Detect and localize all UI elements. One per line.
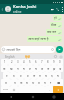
button[interactable]: 9 [51, 59, 57, 65]
button[interactable]: Shift [1, 79, 11, 86]
button[interactable]: म [36, 79, 42, 86]
button[interactable]: 5 [27, 59, 33, 65]
button[interactable]: 6 [33, 59, 39, 65]
staticText: क्या कर रहे [47, 30, 57, 34]
staticText: 0 [59, 60, 61, 64]
button[interactable]: English [1, 54, 19, 59]
staticText: online [13, 10, 22, 14]
button[interactable]: घ [21, 65, 27, 72]
button[interactable]: Back [0, 93, 22, 100]
staticText: र [50, 81, 52, 85]
staticText: घ [23, 67, 25, 71]
button[interactable]: ज [45, 65, 51, 72]
staticText: त [39, 74, 41, 78]
button[interactable]: थ [43, 72, 49, 79]
button[interactable]: Keyboard settings [58, 54, 63, 59]
button[interactable]: 4 [21, 59, 27, 65]
button[interactable]: ब [24, 79, 30, 86]
staticText: Kanha Joshi [13, 4, 37, 10]
button[interactable]: 3 [15, 59, 21, 65]
button[interactable]: Send [56, 46, 63, 53]
button[interactable]: More options [60, 4, 64, 14]
button[interactable]: क [1, 65, 8, 72]
button[interactable]: Recent apps [43, 93, 64, 100]
button[interactable]: Enter [53, 86, 63, 93]
button[interactable]: Emoji [10, 86, 18, 93]
button[interactable]: 2 [8, 59, 15, 65]
button[interactable]: Back [0, 4, 5, 14]
staticText: ञ [59, 67, 62, 71]
button[interactable]: ठ [10, 72, 17, 79]
button[interactable]: आज कहाँ जाना है आपको [27, 36, 62, 42]
staticText: म [38, 81, 40, 85]
button[interactable]: ढ [24, 72, 31, 79]
staticText: छ [41, 67, 44, 71]
staticText: 7 [41, 60, 43, 64]
button[interactable]: Kanha Joshi [13, 4, 50, 14]
button[interactable]: झ [51, 65, 57, 72]
staticText: ध [57, 74, 59, 78]
staticText: 6 [35, 60, 37, 64]
button[interactable]: Call [55, 4, 60, 14]
button[interactable]: Home [22, 93, 43, 100]
button[interactable]: च [33, 65, 39, 72]
staticText: 4 [23, 60, 25, 64]
button[interactable]: प [11, 79, 18, 86]
staticText: प [14, 81, 16, 85]
staticText: ठीक है [51, 23, 57, 27]
button[interactable]: ख [8, 65, 15, 72]
button[interactable]: ण [31, 72, 37, 79]
button[interactable]: ?123 [1, 86, 10, 93]
staticText: ट [6, 74, 8, 78]
staticText: ब [26, 81, 28, 85]
staticText: 8 [47, 60, 49, 64]
staticText: भ [32, 81, 35, 85]
staticText: ड [20, 74, 22, 78]
button[interactable]: ध [55, 72, 61, 79]
button[interactable]: र [48, 79, 54, 86]
staticText: ग [17, 67, 19, 71]
button[interactable]: य [42, 79, 48, 86]
button[interactable]: 8 [45, 59, 51, 65]
button[interactable]: Contact photo [5, 6, 11, 12]
staticText: थ [45, 74, 47, 78]
staticText: ख [10, 67, 13, 71]
staticText: झ [53, 67, 56, 71]
button[interactable]: छ [39, 65, 45, 72]
button[interactable]: ङ [27, 65, 33, 72]
button[interactable]: द [49, 72, 55, 79]
button[interactable]: फ [18, 79, 24, 86]
button[interactable]: आपको दिन [1, 46, 55, 53]
button[interactable]: ञ [57, 65, 63, 72]
button[interactable]: Backspace [54, 79, 63, 86]
button[interactable]: 1 [1, 59, 8, 65]
button[interactable]: ठीक है [50, 22, 62, 28]
button[interactable]: ग [15, 65, 21, 72]
staticText: द [51, 74, 53, 78]
button[interactable]: ट [3, 72, 10, 79]
button[interactable]: Voice input [53, 54, 58, 59]
staticText: 5 [29, 60, 31, 64]
button[interactable]: 0 [57, 59, 63, 65]
button[interactable]: त [37, 72, 43, 79]
staticText: फ [20, 81, 23, 85]
staticText: 1 [4, 60, 6, 64]
staticText: च [35, 67, 37, 71]
staticText: हिंदी [25, 55, 31, 59]
button[interactable]: हिंदी [19, 54, 36, 59]
staticText: ङ [29, 67, 31, 71]
button[interactable]: क्या कर रहे [46, 29, 62, 35]
staticText: ण [33, 74, 36, 78]
button[interactable]: 7 [39, 59, 45, 65]
button[interactable]: हाँ [53, 15, 62, 21]
button[interactable]: Video call [50, 4, 55, 14]
staticText: क [3, 67, 6, 71]
staticText: 2 [11, 60, 13, 64]
staticText: हाँ [54, 16, 57, 20]
button[interactable]: ड [17, 72, 24, 79]
button[interactable]: भ [30, 79, 36, 86]
staticText: आज कहाँ जाना है आपको [28, 37, 57, 41]
